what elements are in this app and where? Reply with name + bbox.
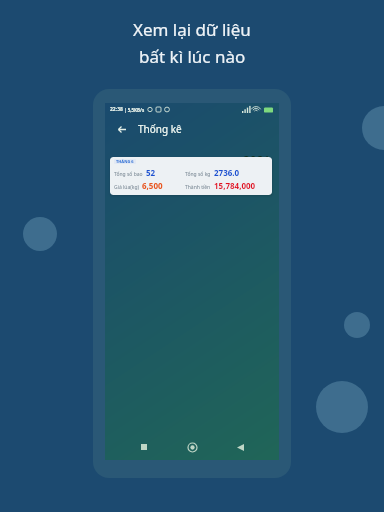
staticText: Tổng số bao xyxy=(114,171,143,178)
staticText: 52 xyxy=(146,167,156,178)
button[interactable]: Recent apps xyxy=(135,438,153,456)
staticText: Thành tiền xyxy=(185,184,211,191)
staticText: | 5,5KB/s xyxy=(124,107,145,113)
staticText: 2736.0 xyxy=(214,167,240,178)
staticText: Tổng số kg xyxy=(185,171,211,178)
staticText: Thống kê xyxy=(138,122,182,136)
staticText: 2021 xyxy=(243,152,271,168)
button[interactable]: Back xyxy=(113,121,129,137)
button[interactable]: Back xyxy=(231,438,249,456)
staticText: 15,784,000 xyxy=(214,180,256,191)
staticText: 22:38 xyxy=(110,106,123,113)
staticText: 6,500 xyxy=(142,180,163,191)
button[interactable]: THÁNG 6 xyxy=(110,157,272,195)
staticText: bất kì lúc nào xyxy=(139,45,246,68)
staticText: Xem lại dữ liệu xyxy=(133,18,251,41)
staticText: THÁNG 6 xyxy=(116,159,134,164)
staticText: Giá lúa(kg) xyxy=(114,184,139,191)
button[interactable]: Home xyxy=(183,438,201,456)
